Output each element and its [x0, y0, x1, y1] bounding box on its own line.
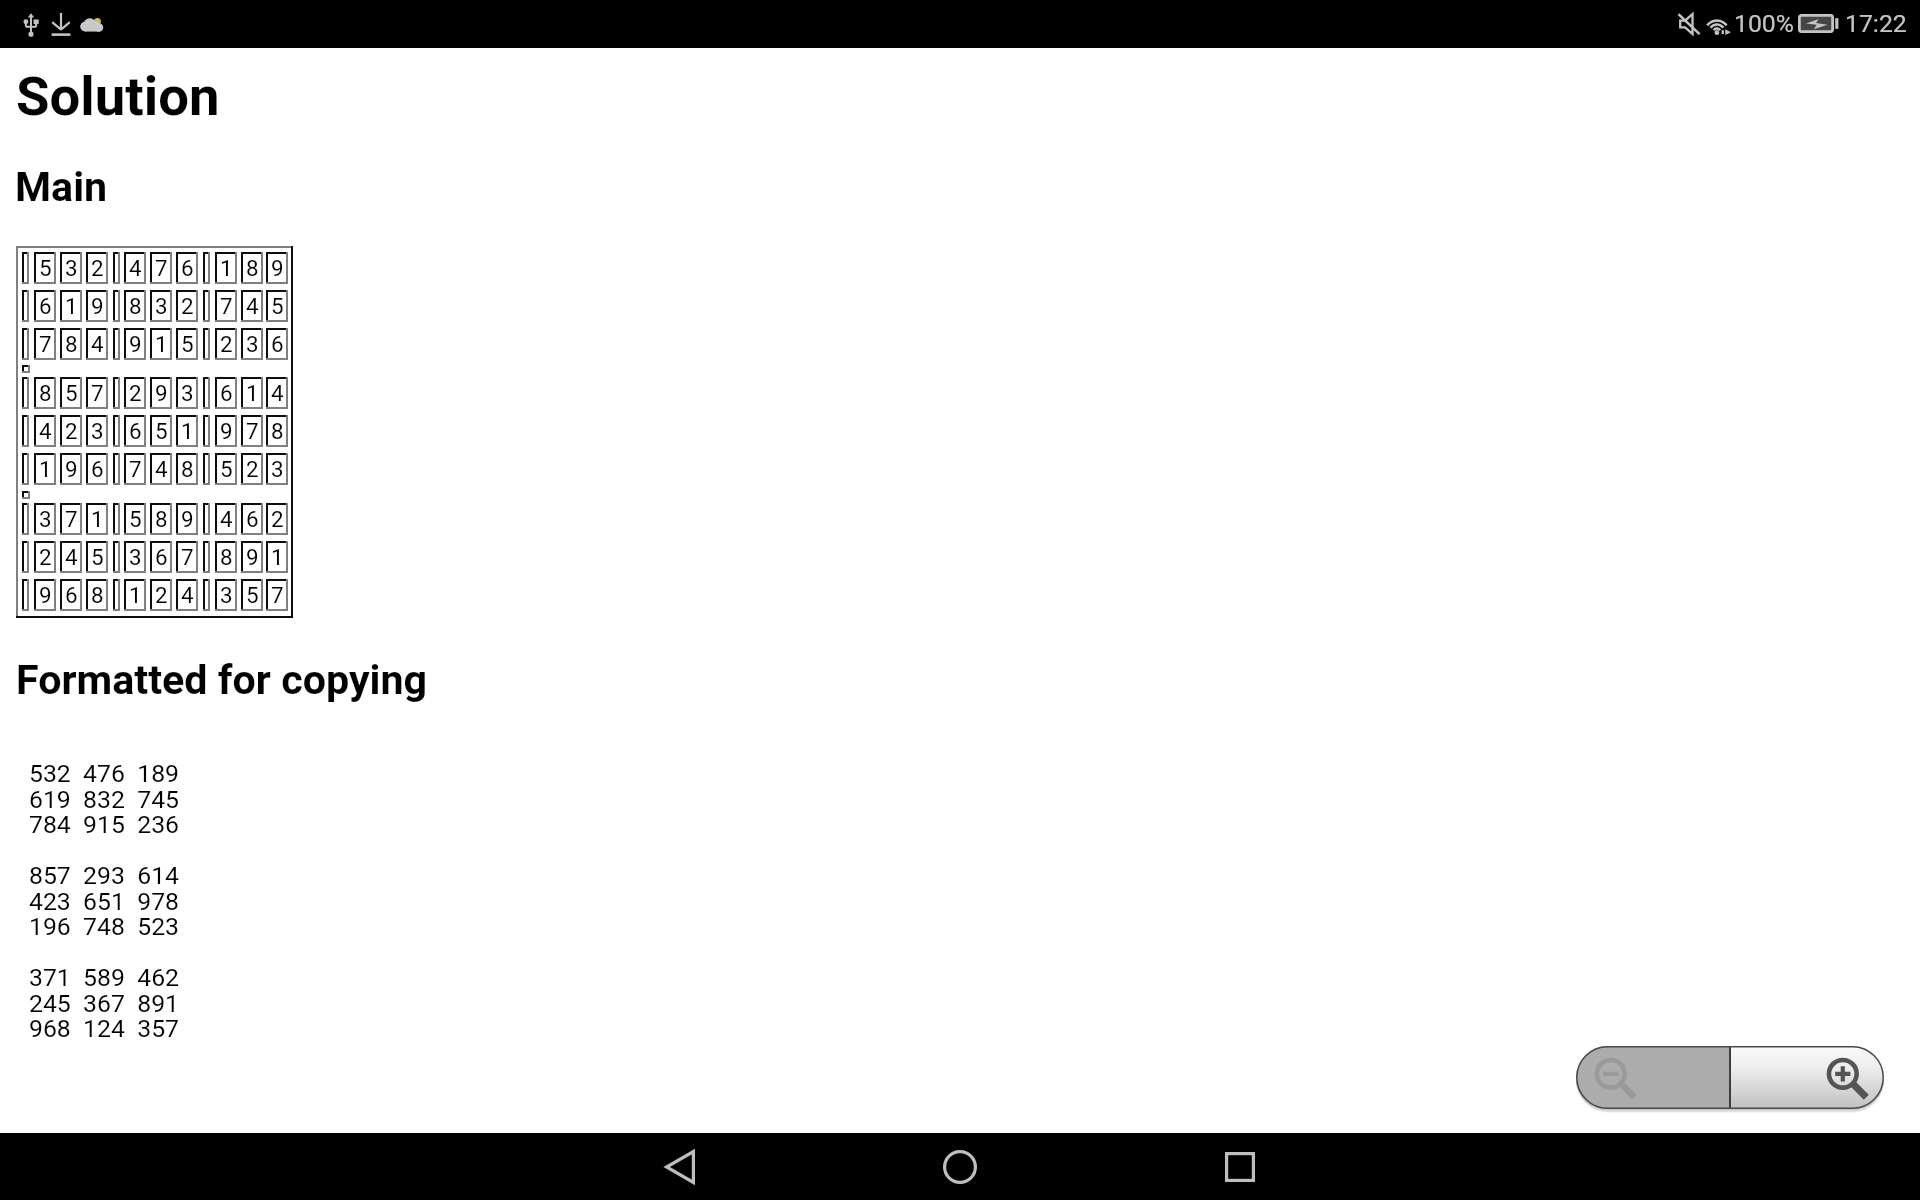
staticText: 2: [91, 255, 104, 281]
staticText: 968 124 357: [29, 1014, 180, 1043]
staticText: 1: [129, 582, 142, 608]
staticText: 5: [271, 293, 284, 319]
staticText: 5: [65, 380, 78, 406]
staticText: 1: [220, 255, 233, 281]
staticText: 1: [39, 456, 52, 482]
staticText: 1: [91, 506, 104, 532]
staticText: 1: [271, 544, 284, 570]
staticText: 4: [271, 380, 284, 406]
staticText: 2: [246, 456, 259, 482]
staticText: 6: [246, 506, 259, 532]
staticText: 532 476 189: [29, 759, 180, 788]
staticText: 4: [129, 255, 142, 281]
staticText: 4: [39, 418, 52, 444]
staticText: 9: [91, 293, 104, 319]
staticText: 2: [181, 293, 194, 319]
staticText: 4: [65, 544, 78, 570]
staticText: 196 748 523: [29, 912, 180, 941]
staticText: 9: [271, 255, 284, 281]
staticText: 9: [220, 418, 233, 444]
staticText: 7: [91, 380, 104, 406]
staticText: 5: [181, 331, 194, 357]
staticText: 8: [181, 456, 194, 482]
staticText: 9: [39, 582, 52, 608]
staticText: 7: [65, 506, 78, 532]
staticText: 3: [155, 293, 168, 319]
staticText: 2: [129, 380, 142, 406]
staticText: 6: [65, 582, 78, 608]
staticText: 371 589 462: [29, 963, 180, 992]
staticText: 2: [39, 544, 52, 570]
staticText: 17:22: [1845, 9, 1907, 38]
staticText: 7: [39, 331, 52, 357]
staticText: 5: [39, 255, 52, 281]
staticText: 3: [220, 582, 233, 608]
staticText: 6: [181, 255, 194, 281]
staticText: 3: [39, 506, 52, 532]
staticText: 8: [246, 255, 259, 281]
staticText: 7: [181, 544, 194, 570]
button[interactable]: Back: [632, 1133, 728, 1200]
staticText: 2: [155, 582, 168, 608]
staticText: 4: [220, 506, 233, 532]
staticText: 245 367 891: [29, 989, 180, 1018]
staticText: 6: [220, 380, 233, 406]
staticText: 7: [271, 582, 284, 608]
staticText: 3: [246, 331, 259, 357]
staticText: 5: [91, 544, 104, 570]
staticText: 4: [91, 331, 104, 357]
staticText: 1: [155, 331, 168, 357]
staticText: 423 651 978: [29, 887, 180, 916]
staticText: 9: [181, 506, 194, 532]
staticText: 8: [220, 544, 233, 570]
staticText: 8: [91, 582, 104, 608]
staticText: 9: [155, 380, 168, 406]
staticText: 5: [129, 506, 142, 532]
staticText: 8: [39, 380, 52, 406]
staticText: 8: [155, 506, 168, 532]
staticText: 5: [246, 582, 259, 608]
staticText: 3: [65, 255, 78, 281]
staticText: 3: [271, 456, 284, 482]
staticText: 5: [155, 418, 168, 444]
staticText: 3: [91, 418, 104, 444]
staticText: 4: [181, 582, 194, 608]
staticText: Formatted for copying: [16, 656, 428, 704]
staticText: 6: [39, 293, 52, 319]
staticText: 1: [246, 380, 259, 406]
staticText: 9: [246, 544, 259, 570]
staticText: 3: [129, 544, 142, 570]
staticText: 6: [91, 456, 104, 482]
staticText: 2: [65, 418, 78, 444]
button[interactable]: Zoom in: [1730, 1046, 1884, 1109]
button[interactable]: Zoom out: [1576, 1046, 1730, 1109]
staticText: 9: [129, 331, 142, 357]
staticText: Main: [15, 163, 108, 211]
staticText: 100%: [1734, 9, 1794, 38]
staticText: 784 915 236: [29, 810, 180, 839]
staticText: 4: [246, 293, 259, 319]
staticText: 2: [220, 331, 233, 357]
staticText: 7: [155, 255, 168, 281]
staticText: 9: [65, 456, 78, 482]
staticText: 6: [155, 544, 168, 570]
staticText: 7: [246, 418, 259, 444]
staticText: 5: [220, 456, 233, 482]
button[interactable]: Recent apps: [1192, 1133, 1288, 1200]
staticText: 8: [65, 331, 78, 357]
staticText: 6: [271, 331, 284, 357]
staticText: 8: [271, 418, 284, 444]
staticText: 3: [181, 380, 194, 406]
staticText: 7: [129, 456, 142, 482]
staticText: 4: [155, 456, 168, 482]
staticText: 857 293 614: [29, 861, 180, 890]
staticText: 1: [65, 293, 78, 319]
staticText: 6: [129, 418, 142, 444]
staticText: 7: [220, 293, 233, 319]
button[interactable]: Home: [912, 1133, 1008, 1200]
staticText: 8: [129, 293, 142, 319]
staticText: Solution: [16, 64, 220, 128]
staticText: 1: [181, 418, 194, 444]
staticText: 619 832 745: [29, 785, 180, 814]
staticText: 2: [271, 506, 284, 532]
